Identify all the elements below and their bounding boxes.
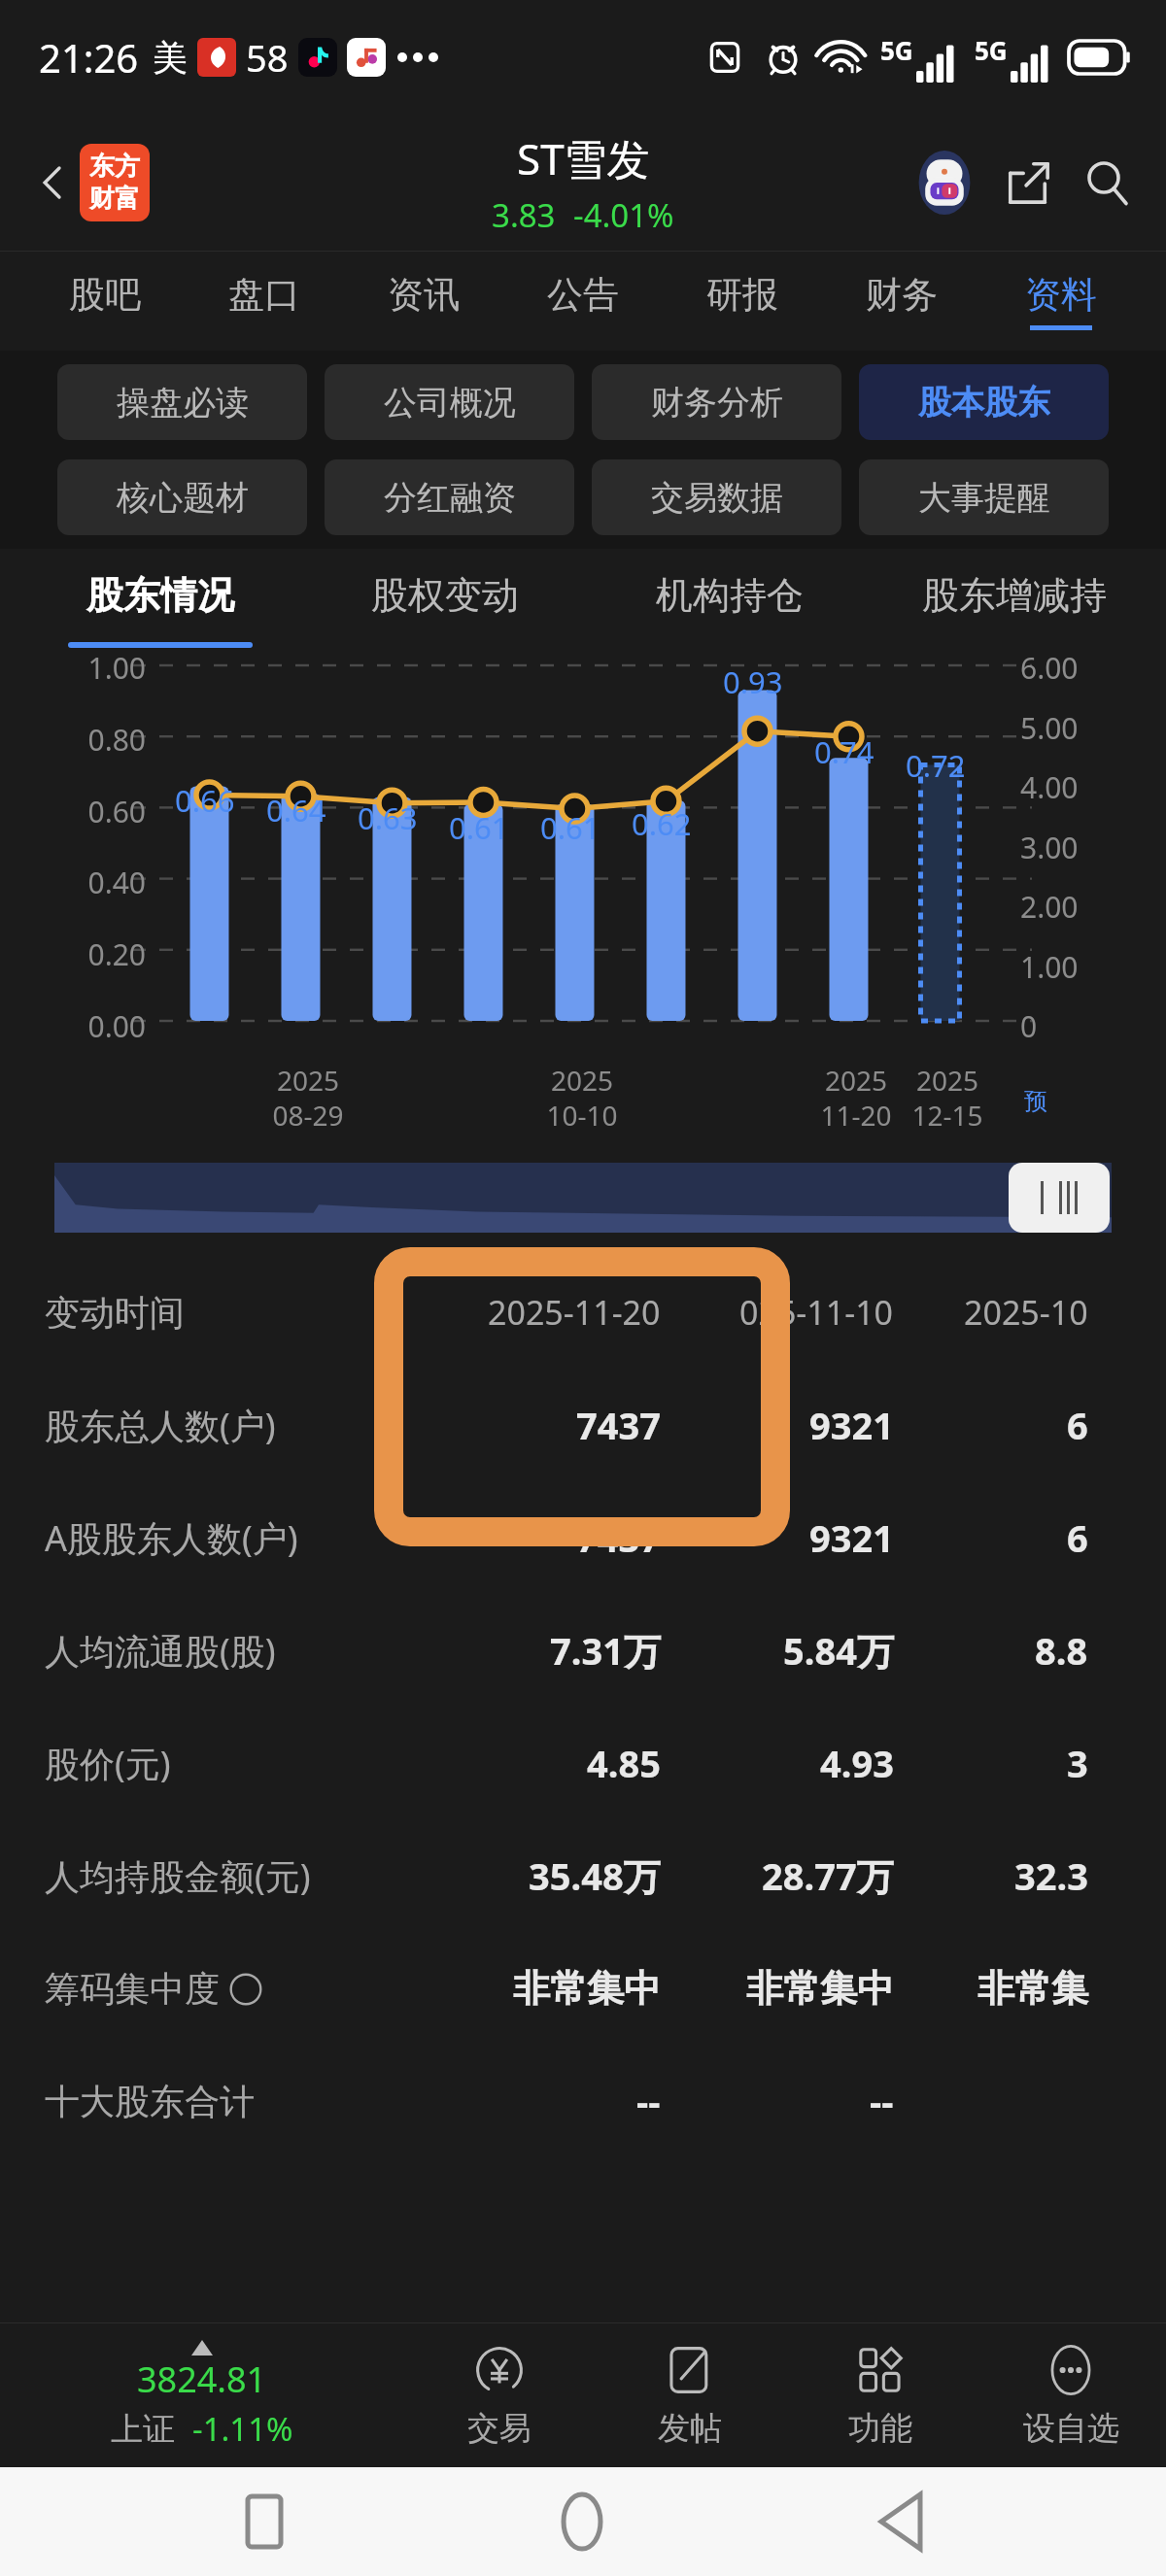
- staticText: 0.74: [814, 731, 874, 772]
- staticText: 股东情况: [86, 572, 234, 619]
- button[interactable]: 股东增减持: [872, 549, 1156, 642]
- button[interactable]: 大事提醒: [859, 459, 1109, 535]
- button[interactable]: 发帖: [595, 2323, 785, 2467]
- staticText: 资料: [1025, 272, 1097, 318]
- staticText: 0.00: [17, 1006, 146, 1046]
- staticText: 人均流通股(股): [45, 1627, 276, 1675]
- staticText: 财务: [866, 272, 938, 318]
- staticText: 设自选: [1023, 2408, 1119, 2449]
- staticText: 大事提醒: [918, 477, 1050, 519]
- staticText: ST雪发: [517, 129, 650, 187]
- button[interactable]: 股权变动: [302, 549, 587, 642]
- staticText: 2025 12-15: [911, 1062, 983, 1134]
- button[interactable]: East Money: [80, 144, 150, 221]
- staticText: 0.80: [17, 720, 146, 760]
- button[interactable]: Recents: [211, 2468, 318, 2575]
- button[interactable]: Search: [1071, 146, 1145, 220]
- button[interactable]: 设自选: [976, 2323, 1166, 2467]
- staticText: 2025 10-10: [546, 1062, 618, 1134]
- staticText: 东: [89, 151, 115, 183]
- staticText: 2025-10: [964, 1290, 1088, 1335]
- staticText: 核心题材: [117, 477, 249, 519]
- staticText: --: [870, 2076, 894, 2126]
- button[interactable]: 功能: [785, 2323, 976, 2467]
- button[interactable]: 3824.81: [0, 2323, 404, 2467]
- staticText: 28.77万: [762, 1850, 894, 1901]
- button[interactable]: Back: [847, 2468, 954, 2575]
- staticText: 0.20: [17, 934, 146, 974]
- staticText: 0: [1020, 1006, 1152, 1046]
- staticText: 6: [1067, 1400, 1088, 1450]
- button[interactable]: 资讯: [344, 252, 503, 351]
- staticText: 机构持仓: [656, 572, 804, 619]
- button[interactable]: 公司概况: [325, 364, 574, 440]
- staticText: 1.00: [17, 648, 146, 688]
- button[interactable]: 股东总人数(户): [0, 1369, 1166, 1481]
- button[interactable]: Range handle: [1009, 1163, 1110, 1233]
- button[interactable]: 股价(元): [0, 1707, 1166, 1819]
- button[interactable]: 人均持股金额(元): [0, 1819, 1166, 1932]
- button[interactable]: 公告: [503, 252, 663, 351]
- button[interactable]: AI assistant: [908, 146, 981, 220]
- staticText: 非常集: [977, 1965, 1088, 2012]
- staticText: 9321: [809, 1400, 894, 1450]
- button[interactable]: 股吧: [25, 252, 185, 351]
- staticText: 2.00: [1020, 887, 1152, 927]
- staticText: 3.83: [492, 193, 556, 237]
- button[interactable]: Range handle: [54, 1163, 1112, 1233]
- button[interactable]: 人均流通股(股): [0, 1594, 1166, 1707]
- staticText: 0.61: [449, 807, 509, 848]
- staticText: 7437: [576, 1512, 661, 1563]
- button[interactable]: 变动时间: [0, 1256, 1166, 1369]
- button[interactable]: Back: [14, 144, 91, 221]
- button[interactable]: Share: [991, 146, 1065, 220]
- staticText: 4.00: [1020, 767, 1152, 807]
- staticText: 上证: [111, 2409, 175, 2450]
- staticText: 交易: [467, 2408, 532, 2449]
- staticText: 盘口: [228, 272, 300, 318]
- staticText: 8.8: [1035, 1625, 1088, 1676]
- button[interactable]: 交易数据: [592, 459, 841, 535]
- staticText: 6.00: [1020, 648, 1152, 688]
- button[interactable]: 交易: [404, 2323, 595, 2467]
- staticText: 研报: [706, 272, 778, 318]
- button[interactable]: 核心题材: [57, 459, 307, 535]
- staticText: 富: [115, 183, 140, 215]
- staticText: 0.64: [266, 790, 326, 830]
- staticText: 非常集中: [746, 1965, 894, 2012]
- staticText: 35.48万: [529, 1850, 661, 1901]
- button[interactable]: 财务分析: [592, 364, 841, 440]
- staticText: 3824.81: [137, 2356, 267, 2403]
- staticText: 财务分析: [651, 382, 783, 424]
- staticText: 4.85: [587, 1738, 661, 1788]
- staticText: 公告: [547, 272, 619, 318]
- button[interactable]: 机构持仓: [587, 549, 872, 642]
- button[interactable]: 十大股东合计: [0, 2045, 1166, 2157]
- staticText: 预: [1024, 1087, 1047, 1116]
- button[interactable]: 研报: [663, 252, 822, 351]
- staticText: 股本股东: [918, 382, 1050, 424]
- button[interactable]: 筹码集中度: [0, 1932, 1166, 2045]
- staticText: 6: [1067, 1512, 1088, 1563]
- button[interactable]: 分红融资: [325, 459, 574, 535]
- button[interactable]: 盘口: [185, 252, 344, 351]
- staticText: 5.84万: [783, 1625, 894, 1676]
- staticText: 7.31万: [550, 1625, 661, 1676]
- staticText: 21:26: [39, 31, 139, 84]
- staticText: -4.01%: [573, 193, 674, 237]
- staticText: 58: [246, 32, 289, 83]
- staticText: 股东总人数(户): [45, 1402, 276, 1449]
- staticText: 2025 11-20: [820, 1062, 892, 1134]
- button[interactable]: 股东情况: [17, 549, 302, 642]
- button[interactable]: Home: [529, 2468, 635, 2575]
- button[interactable]: 资料: [981, 252, 1141, 351]
- button[interactable]: 操盘必读: [57, 364, 307, 440]
- staticText: 股价(元): [45, 1740, 171, 1787]
- staticText: -1.11%: [192, 2407, 293, 2451]
- button[interactable]: 财务: [822, 252, 981, 351]
- button[interactable]: A股股东人数(户): [0, 1481, 1166, 1594]
- staticText: 2025 08-29: [272, 1062, 344, 1134]
- button[interactable]: 股本股东: [859, 364, 1109, 440]
- staticText: 美: [153, 36, 188, 80]
- staticText: 财: [89, 183, 115, 215]
